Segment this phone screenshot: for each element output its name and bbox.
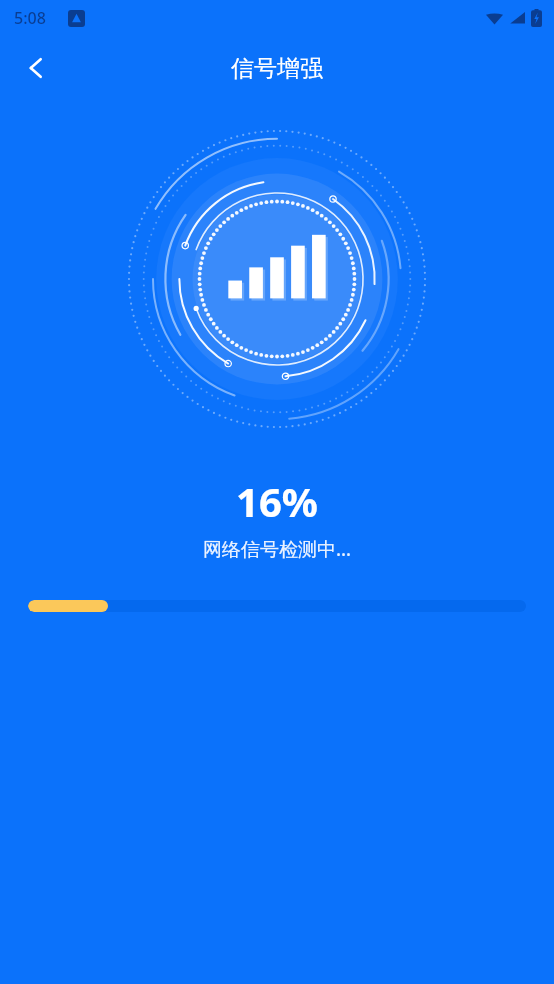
button[interactable]: Back — [12, 44, 60, 92]
staticText: 5:08 — [14, 7, 46, 29]
staticText: 网络信号检测中… — [0, 536, 554, 562]
staticText: 16% — [0, 474, 554, 528]
staticText: 信号增强 — [231, 54, 323, 83]
